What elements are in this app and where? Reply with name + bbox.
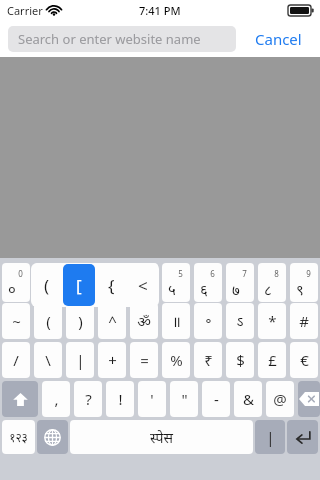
staticText: ' [150, 389, 154, 409]
staticText: 7 [242, 268, 247, 279]
button[interactable]: / [2, 342, 30, 378]
button[interactable]: Change keyboard [37, 420, 68, 454]
staticText: ४ [136, 279, 144, 299]
button[interactable]: € [290, 342, 318, 378]
staticText: ॐ [137, 311, 151, 331]
button[interactable]: 3 [98, 263, 126, 302]
button[interactable]: 5 [162, 263, 190, 302]
staticText: - [214, 389, 219, 409]
button[interactable]: ~ [2, 303, 30, 339]
button[interactable]: \ [34, 342, 62, 378]
button[interactable]: Search or enter website name [8, 26, 236, 52]
staticText: 0 [18, 268, 23, 279]
button[interactable]: 1 [34, 263, 62, 302]
staticText: ) [78, 311, 83, 331]
staticText: ( [46, 311, 51, 331]
staticText: [ [76, 274, 82, 297]
staticText: % [170, 350, 183, 370]
staticText: | [76, 350, 85, 370]
button[interactable]: " [170, 381, 198, 417]
staticText: \ [45, 350, 51, 370]
staticText: ० [8, 279, 16, 299]
button[interactable]: ' [138, 381, 166, 417]
staticText: ₹ [204, 350, 213, 370]
staticText: स्पेस [150, 428, 173, 447]
staticText: ३ [104, 279, 112, 299]
button[interactable]: ऽ [226, 303, 254, 339]
button[interactable]: [ [63, 264, 95, 306]
button[interactable]: १२३ [2, 420, 35, 454]
staticText: ( [44, 274, 50, 297]
staticText: " [181, 389, 188, 409]
staticText: Cancel [255, 29, 302, 49]
staticText: < [138, 274, 148, 297]
button[interactable]: $ [226, 342, 254, 378]
staticText: + [108, 350, 117, 370]
button[interactable]: & [234, 381, 262, 417]
button[interactable]: ! [106, 381, 134, 417]
button[interactable]: - [202, 381, 230, 417]
button[interactable]: 8 [258, 263, 286, 302]
staticText: ! [118, 389, 123, 409]
staticText: ॥ [172, 311, 181, 331]
staticText: 9 [306, 268, 311, 279]
button[interactable]: ( [31, 264, 63, 306]
button[interactable]: 4 [130, 263, 158, 302]
button[interactable]: ( [34, 303, 62, 339]
button[interactable]: 0 [2, 263, 30, 302]
staticText: ८ [264, 279, 272, 299]
button[interactable]: ॐ [130, 303, 158, 339]
staticText: & [243, 389, 254, 409]
staticText: Search or enter website name [18, 30, 201, 48]
staticText: # [299, 311, 309, 331]
staticText: { [108, 274, 115, 297]
button[interactable]: * [258, 303, 286, 339]
button[interactable]: @ [266, 381, 294, 417]
staticText: २ [72, 279, 80, 299]
button[interactable]: Return [287, 420, 318, 454]
button[interactable]: Delete [298, 381, 320, 417]
staticText: ॰ [205, 311, 212, 331]
button[interactable]: 6 [194, 263, 222, 302]
button[interactable]: ^ [98, 303, 126, 339]
button[interactable]: Shift [2, 381, 38, 417]
button[interactable]: ॰ [194, 303, 222, 339]
staticText: ५ [168, 279, 176, 299]
button[interactable]: { [95, 264, 127, 306]
staticText: ६ [200, 279, 208, 299]
button[interactable]: ॥ [162, 303, 190, 339]
staticText: @ [273, 389, 287, 409]
button[interactable]: | [66, 342, 94, 378]
staticText: १२३ [9, 429, 28, 445]
button[interactable]: | [255, 420, 285, 454]
staticText: , [54, 389, 59, 409]
button[interactable]: 9 [290, 263, 318, 302]
staticText: ऽ [236, 311, 244, 331]
staticText: ७ [232, 279, 240, 299]
button[interactable]: ) [66, 303, 94, 339]
button[interactable]: 7 [226, 263, 254, 302]
button[interactable]: = [130, 342, 158, 378]
button[interactable]: ? [74, 381, 102, 417]
button[interactable]: 2 [66, 263, 94, 302]
button[interactable]: स्पेस [70, 420, 253, 454]
staticText: $ [236, 350, 245, 370]
staticText: | [266, 427, 275, 447]
button[interactable]: £ [258, 342, 286, 378]
button[interactable]: ₹ [194, 342, 222, 378]
button[interactable]: < [127, 264, 159, 306]
button[interactable]: % [162, 342, 190, 378]
staticText: / [13, 350, 19, 370]
staticText: 5 [178, 268, 183, 279]
button[interactable]: + [98, 342, 126, 378]
staticText: £ [268, 350, 277, 370]
staticText: 6 [210, 268, 215, 279]
button[interactable]: , [42, 381, 70, 417]
button[interactable]: Cancel [236, 20, 320, 57]
staticText: ९ [296, 279, 304, 299]
button[interactable]: # [290, 303, 318, 339]
